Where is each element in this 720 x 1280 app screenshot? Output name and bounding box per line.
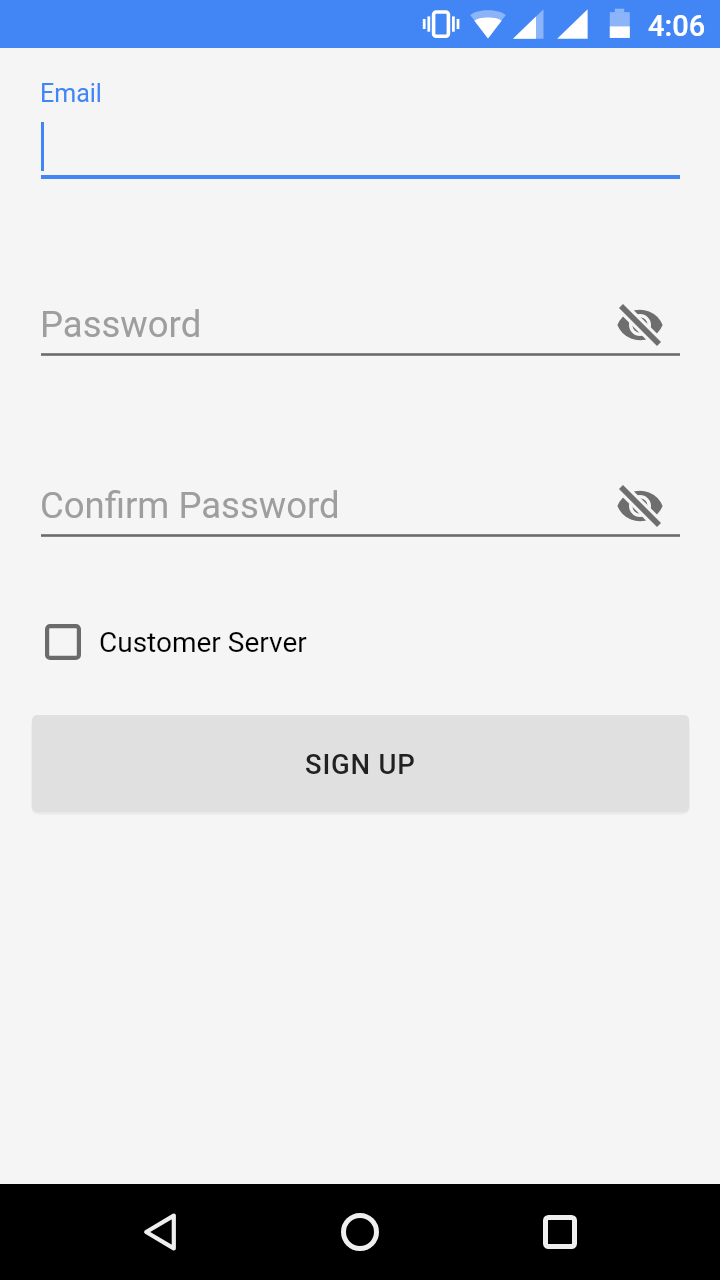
button[interactable]: Confirm Password <box>41 479 601 539</box>
button[interactable]: Back <box>112 1184 208 1280</box>
staticText: Customer Server <box>99 626 307 659</box>
button[interactable]: Show password <box>614 480 666 532</box>
button[interactable]: Customer Server <box>41 614 307 670</box>
button[interactable]: Email <box>41 72 680 179</box>
staticText: SIGN UP <box>305 748 416 780</box>
button[interactable]: SIGN UP <box>32 715 689 812</box>
staticText: Password <box>40 303 202 346</box>
button[interactable]: Recent apps <box>512 1184 608 1280</box>
button[interactable]: Show password <box>614 299 666 351</box>
staticText: 4:06 <box>648 9 706 43</box>
staticText: Confirm Password <box>40 484 340 527</box>
button[interactable]: Home <box>312 1184 408 1280</box>
staticText: Email <box>40 79 102 108</box>
button[interactable]: Password <box>41 298 601 358</box>
